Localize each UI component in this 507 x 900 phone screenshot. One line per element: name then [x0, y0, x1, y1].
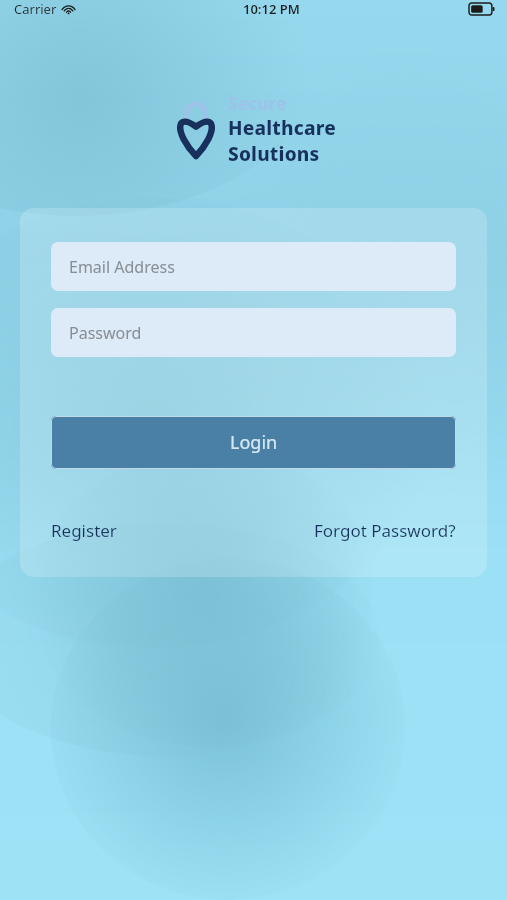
staticText: Solutions — [228, 141, 320, 167]
staticText: Forgot Password? — [314, 519, 456, 542]
button[interactable]: Login — [51, 416, 456, 469]
button[interactable]: Forgot Password? — [314, 515, 456, 546]
staticText: Secure — [228, 92, 287, 115]
staticText: Password — [69, 322, 142, 344]
staticText: Register — [51, 519, 117, 542]
button[interactable]: Password — [51, 308, 456, 357]
staticText: 10:12 PM — [243, 0, 300, 18]
staticText: Login — [230, 430, 278, 455]
staticText: Carrier — [14, 0, 57, 18]
staticText: Email Address — [69, 256, 175, 278]
staticText: Healthcare — [228, 115, 336, 141]
button[interactable]: Email Address — [51, 242, 456, 291]
button[interactable]: Register — [51, 515, 117, 546]
